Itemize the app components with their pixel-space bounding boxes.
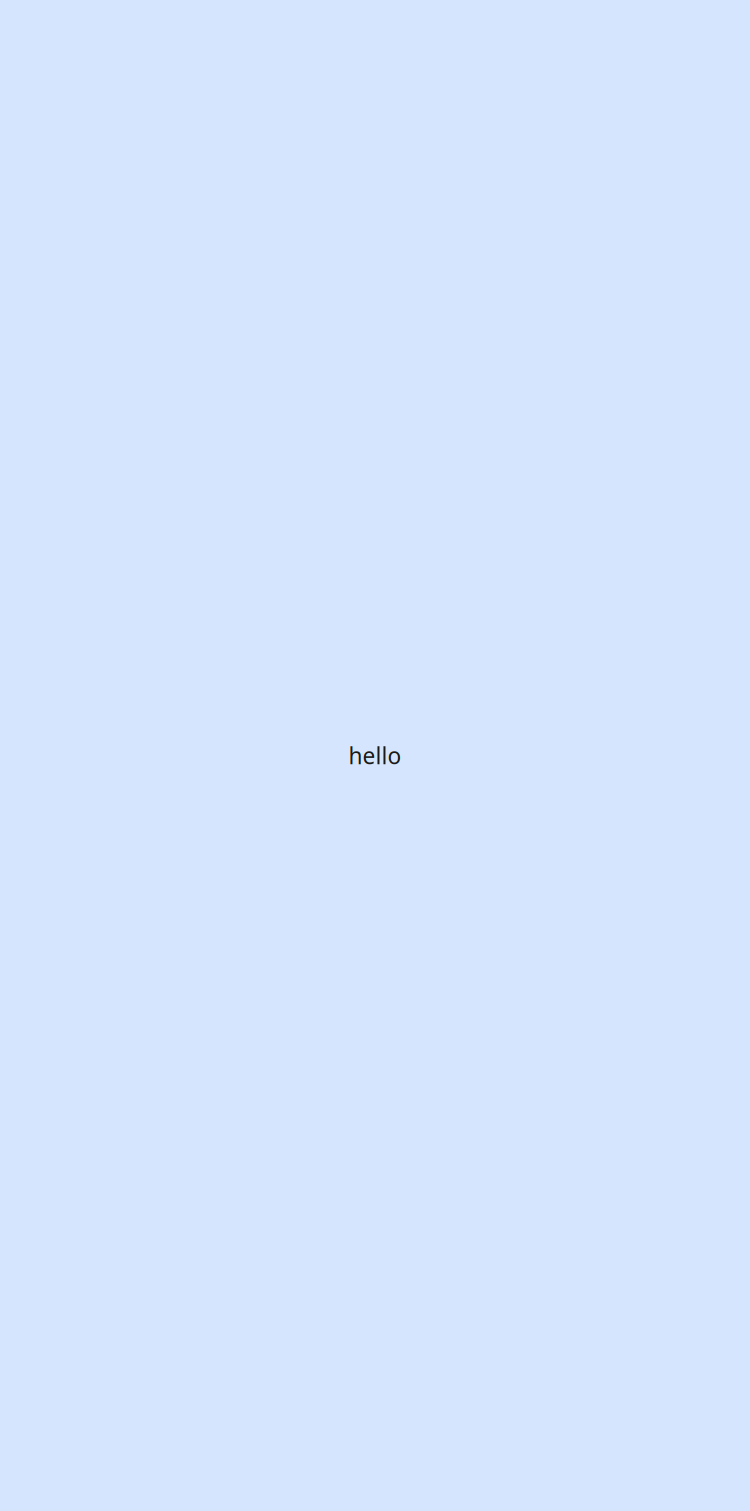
- staticText: hello: [348, 740, 401, 770]
